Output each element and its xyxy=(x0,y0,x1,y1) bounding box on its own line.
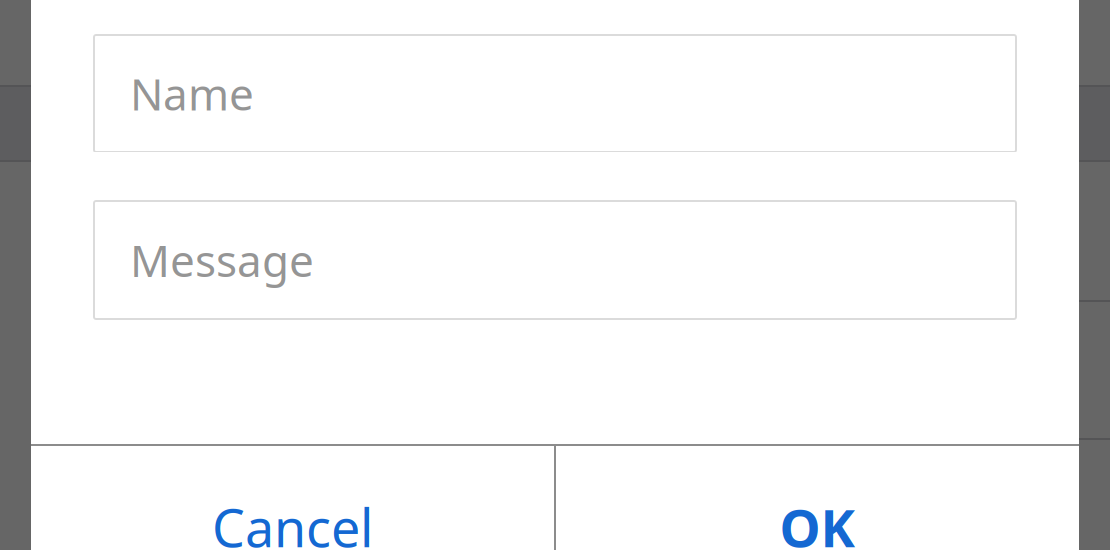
button[interactable]: Name xyxy=(94,35,1016,152)
staticText: OK xyxy=(779,492,855,550)
staticText: Name xyxy=(130,64,254,123)
button[interactable]: OK xyxy=(556,446,1079,550)
button[interactable]: Message xyxy=(94,201,1016,319)
staticText: Cancel xyxy=(212,492,373,550)
staticText: Message xyxy=(130,231,314,289)
button[interactable]: Cancel xyxy=(31,446,554,550)
